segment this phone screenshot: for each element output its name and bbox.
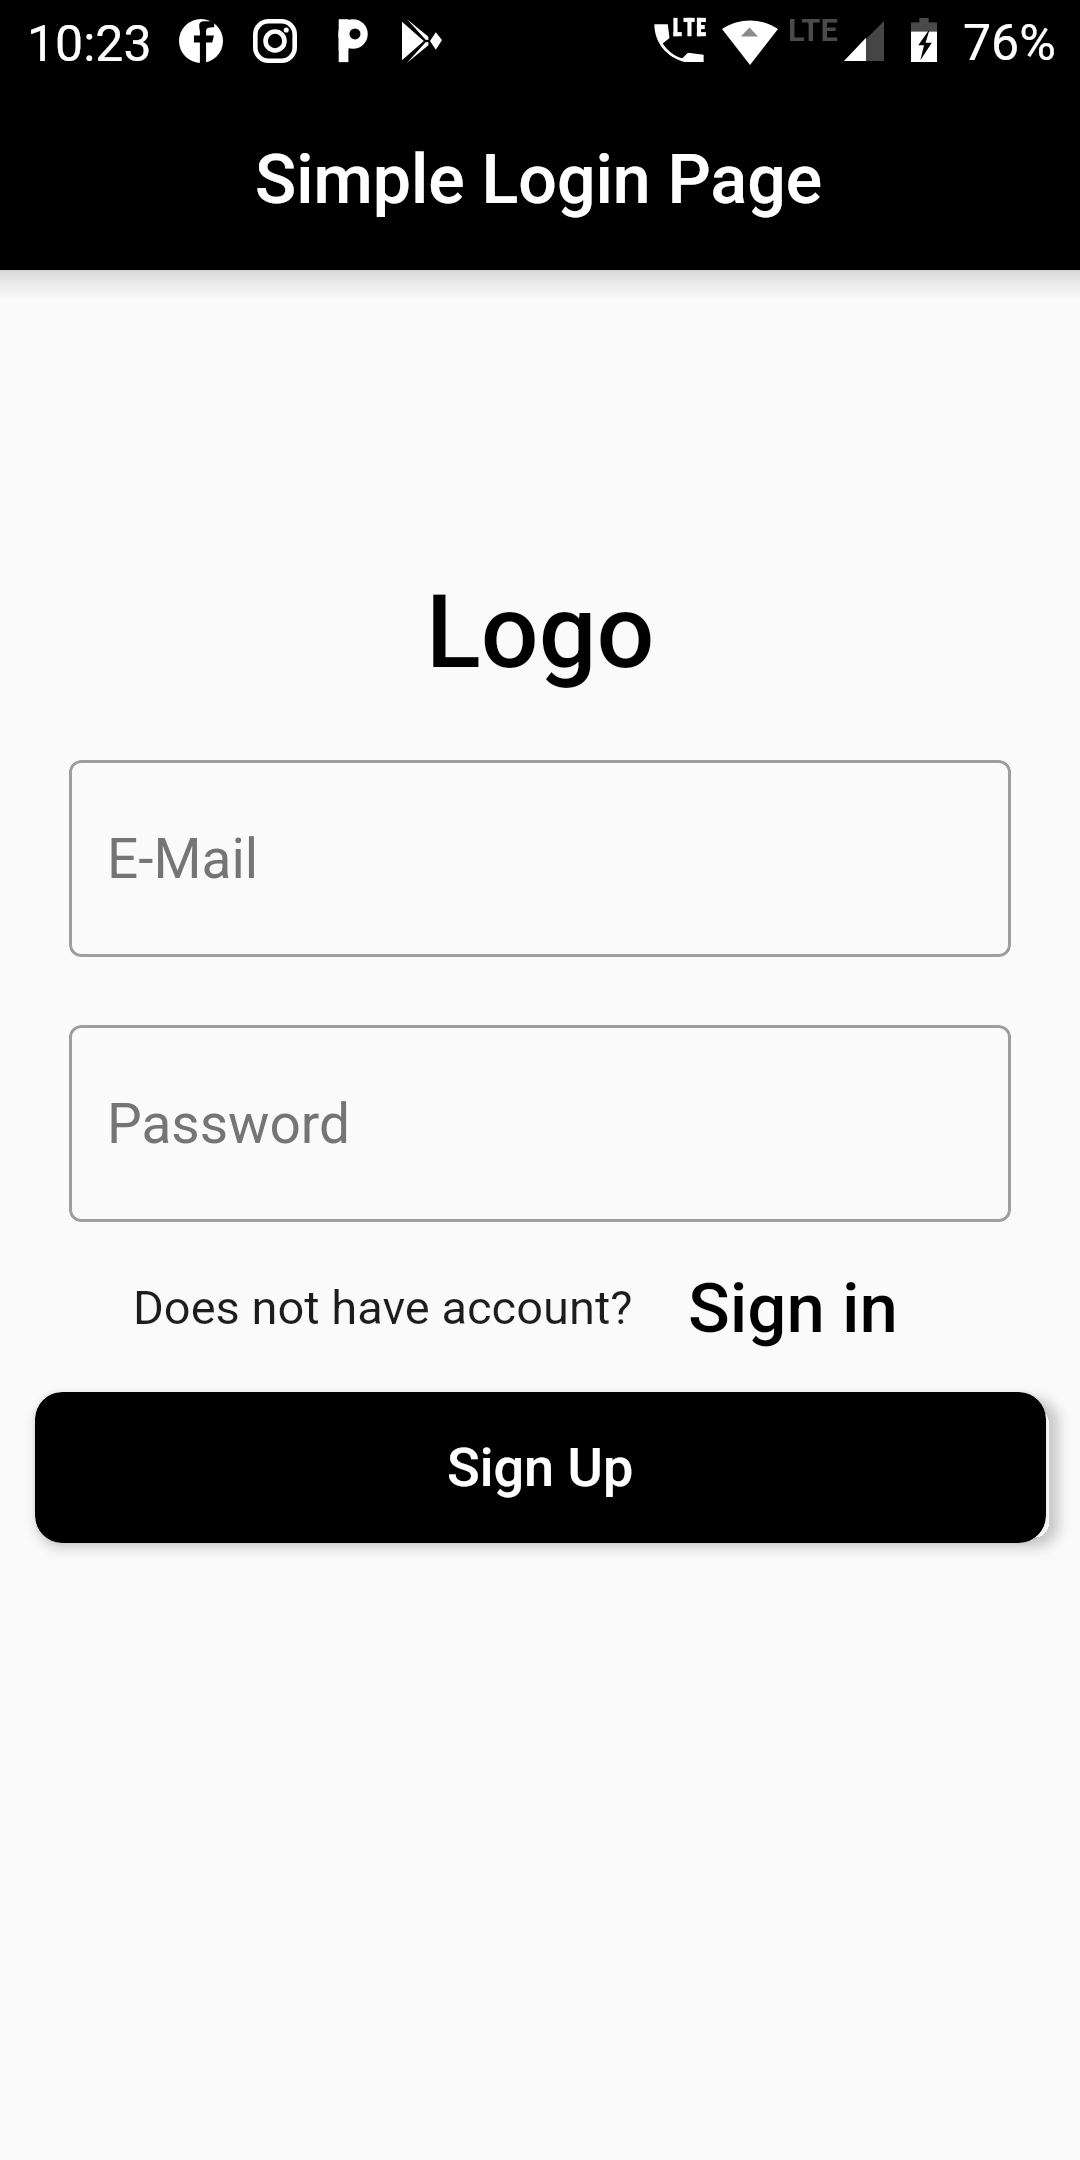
staticText: Simple Login Page [255,140,823,220]
staticText: Password [107,1092,350,1156]
other: VoLTE calling [651,16,707,62]
staticText: E-Mail [107,827,259,891]
button[interactable]: Sign Up [35,1392,1046,1543]
other: Mobile signal [844,21,884,61]
other: Facebook [179,19,223,63]
other: Instagram [253,19,297,63]
staticText: 10:23 [27,15,152,74]
staticText: LTE [788,12,838,48]
other: Wi-Fi [722,25,778,65]
other: App notification [331,19,375,63]
staticText: Sign in [688,1268,899,1349]
button[interactable]: Password [69,1025,1011,1222]
staticText: Does not have account? [133,1280,633,1335]
other: Battery charging [911,18,937,62]
staticText: Sign Up [447,1436,634,1499]
button[interactable]: E-Mail [69,760,1011,957]
button[interactable]: Sign in [688,1268,899,1349]
staticText: Logo [0,572,1080,692]
staticText: 76% [963,14,1056,73]
other: Play Store [402,19,442,63]
